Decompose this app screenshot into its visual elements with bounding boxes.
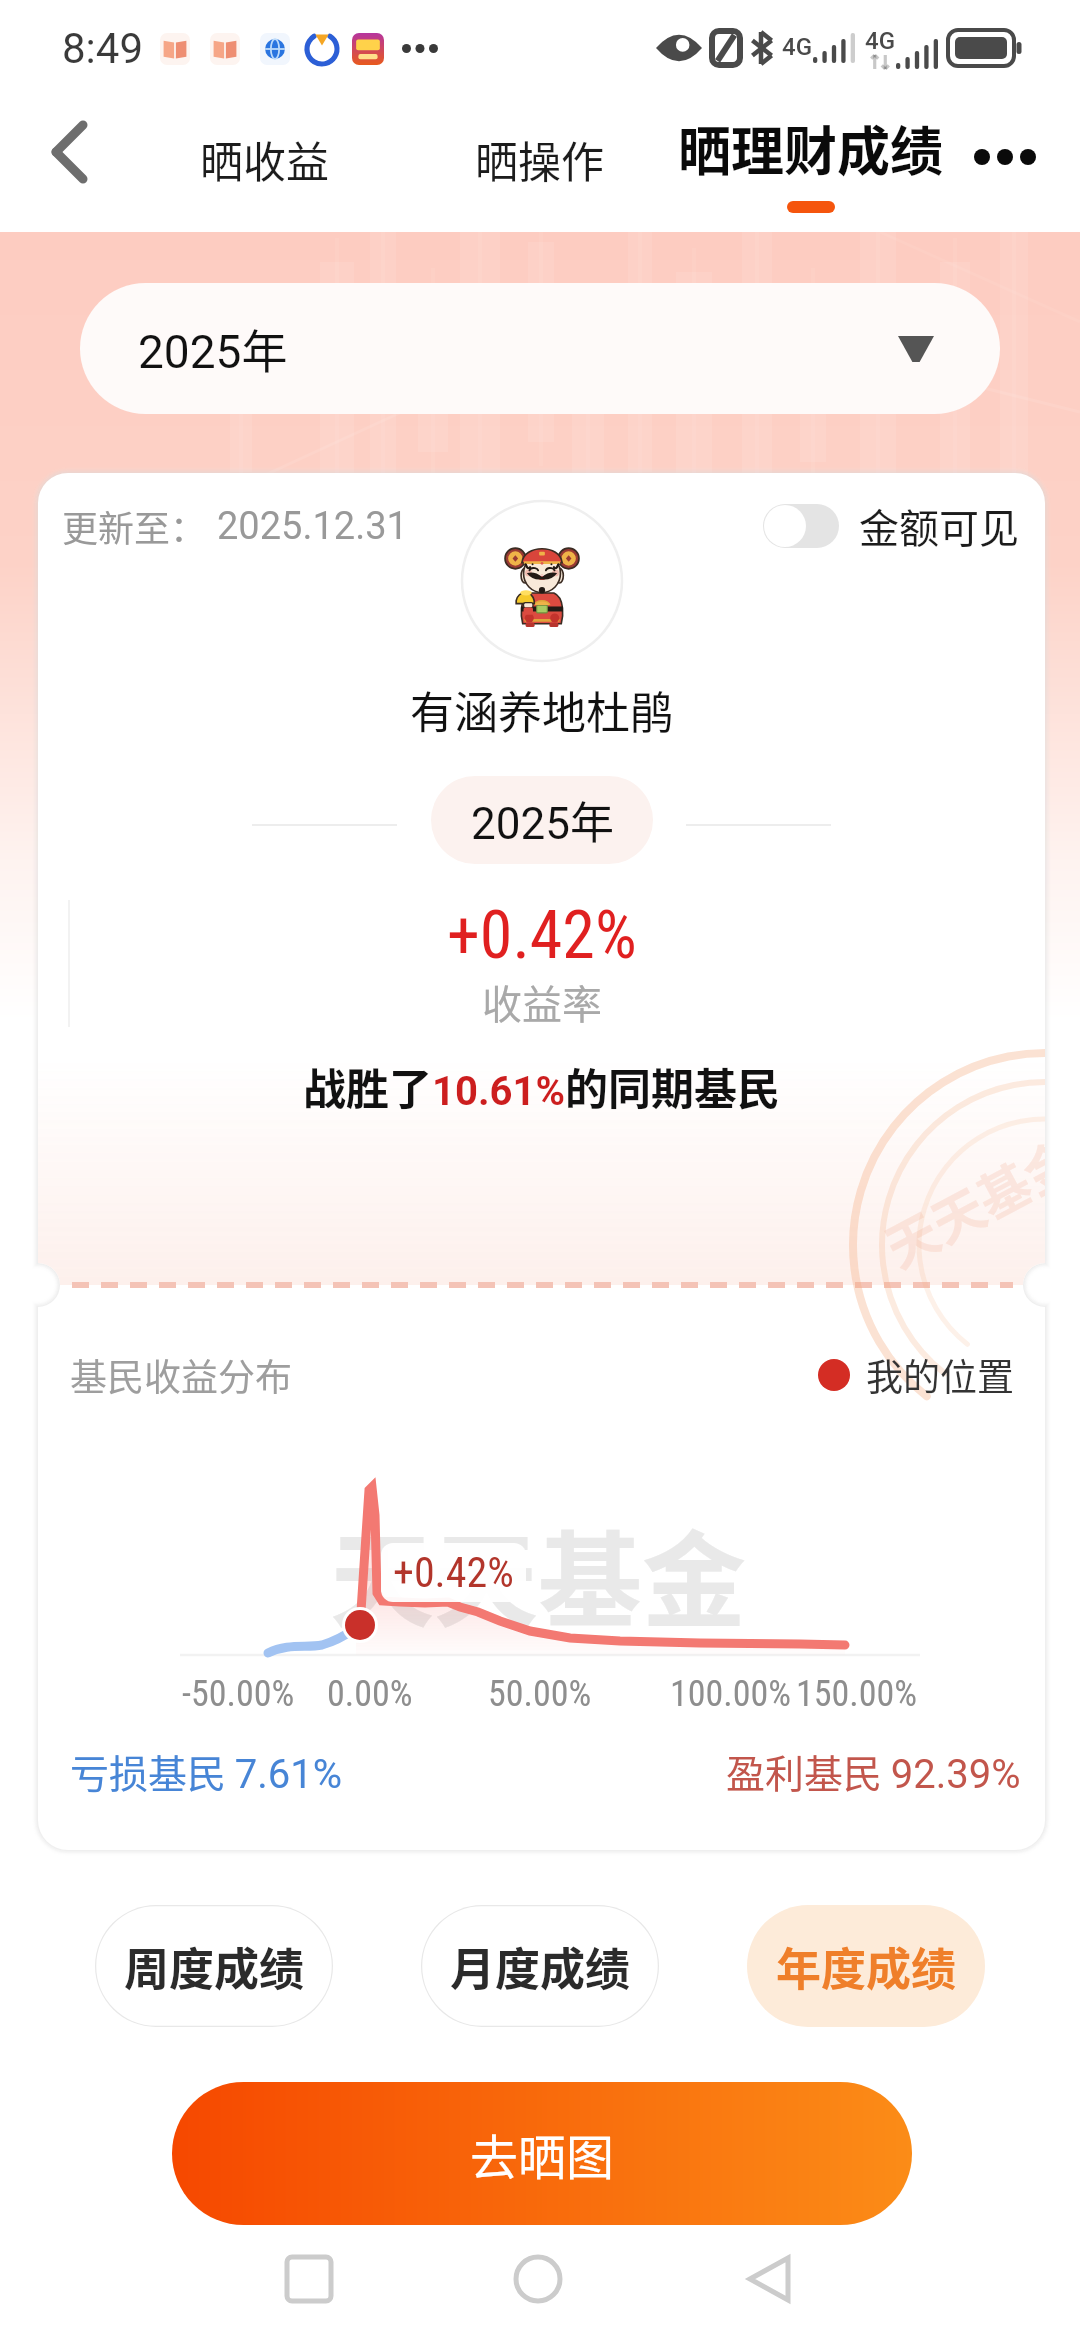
button[interactable]: 周度成绩 xyxy=(95,1905,333,2027)
staticText: 50.00% xyxy=(488,1673,592,1715)
button[interactable]: Home xyxy=(497,2238,579,2320)
staticText: 2025.12.31 xyxy=(217,504,408,549)
staticText: +0.42% xyxy=(447,897,637,974)
staticText: 去晒图 xyxy=(470,2119,615,2189)
staticText: 周度成绩 xyxy=(124,1934,305,1999)
staticText: 晒收益 xyxy=(200,128,329,190)
button[interactable] xyxy=(763,504,839,548)
staticText: 4G xyxy=(865,27,895,55)
staticText: 晒理财成绩 xyxy=(678,110,943,187)
staticText: 2025年 xyxy=(471,788,614,852)
button[interactable]: 月度成绩 xyxy=(421,1905,659,2027)
staticText: 收益率 xyxy=(482,973,602,1031)
staticText: -50.00% xyxy=(182,1673,295,1715)
button[interactable]: 去晒图 xyxy=(172,2082,912,2225)
button[interactable]: 晒收益 xyxy=(180,118,349,200)
button[interactable]: 晒操作 xyxy=(455,118,624,200)
staticText: 月度成绩 xyxy=(450,1934,631,1999)
staticText: 100.00% xyxy=(670,1673,792,1715)
staticText: 晒操作 xyxy=(475,128,604,190)
staticText: 有涵养地杜鹃 xyxy=(410,678,674,742)
staticText: 天天基金 xyxy=(330,1498,747,1649)
staticText: 亏损基民 7.61% xyxy=(70,1743,343,1799)
button[interactable]: Back xyxy=(728,2238,810,2320)
staticText: 150.00% xyxy=(796,1673,918,1715)
staticText: 8:49 xyxy=(62,24,143,73)
button[interactable]: Back xyxy=(28,112,108,192)
staticText: 年度成绩 xyxy=(776,1934,957,1999)
staticText: 我的位置 xyxy=(866,1348,1014,1402)
button[interactable]: 2025年 xyxy=(80,283,1000,414)
button[interactable]: 晒理财成绩 xyxy=(660,110,961,213)
button[interactable]: More options xyxy=(960,122,1050,192)
staticText: 2025年 xyxy=(138,315,288,382)
staticText: 战胜了10.61%的同期基民 xyxy=(303,1055,780,1117)
staticText: 0.00% xyxy=(327,1673,413,1715)
staticText: 金额可见 xyxy=(859,497,1019,555)
staticText: +0.42% xyxy=(393,1548,514,1597)
staticText: 4G xyxy=(782,33,812,61)
staticText: 盈利基民 92.39% xyxy=(726,1743,1021,1799)
staticText: 基民收益分布 xyxy=(70,1348,292,1402)
button[interactable]: 年度成绩 xyxy=(747,1905,985,2027)
staticText: 更新至： xyxy=(62,500,207,552)
staticText: 天天基金 xyxy=(871,1118,1045,1283)
button[interactable]: Recents xyxy=(268,2238,350,2320)
